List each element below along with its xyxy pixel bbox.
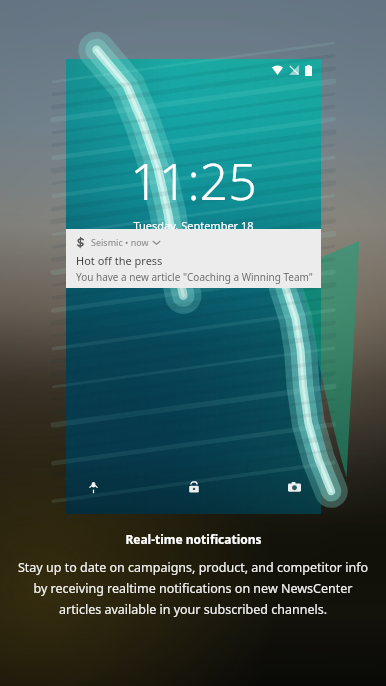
staticText: You have a new article "Coaching a Winni… <box>76 270 313 284</box>
staticText: Seismic • now <box>91 236 149 248</box>
button[interactable]: Seismic • now <box>66 229 321 288</box>
staticText: 11:25 <box>130 147 257 215</box>
button[interactable]: Unlock <box>181 474 207 500</box>
staticText: Tuesday, September 18 <box>133 218 254 233</box>
staticText: Real-time notifications <box>125 531 262 547</box>
button[interactable]: Camera <box>281 474 307 500</box>
staticText: Hot off the press <box>76 253 163 268</box>
button[interactable]: Voice assistant <box>80 474 106 500</box>
staticText: Stay up to date on campaigns, product, a… <box>14 559 372 618</box>
